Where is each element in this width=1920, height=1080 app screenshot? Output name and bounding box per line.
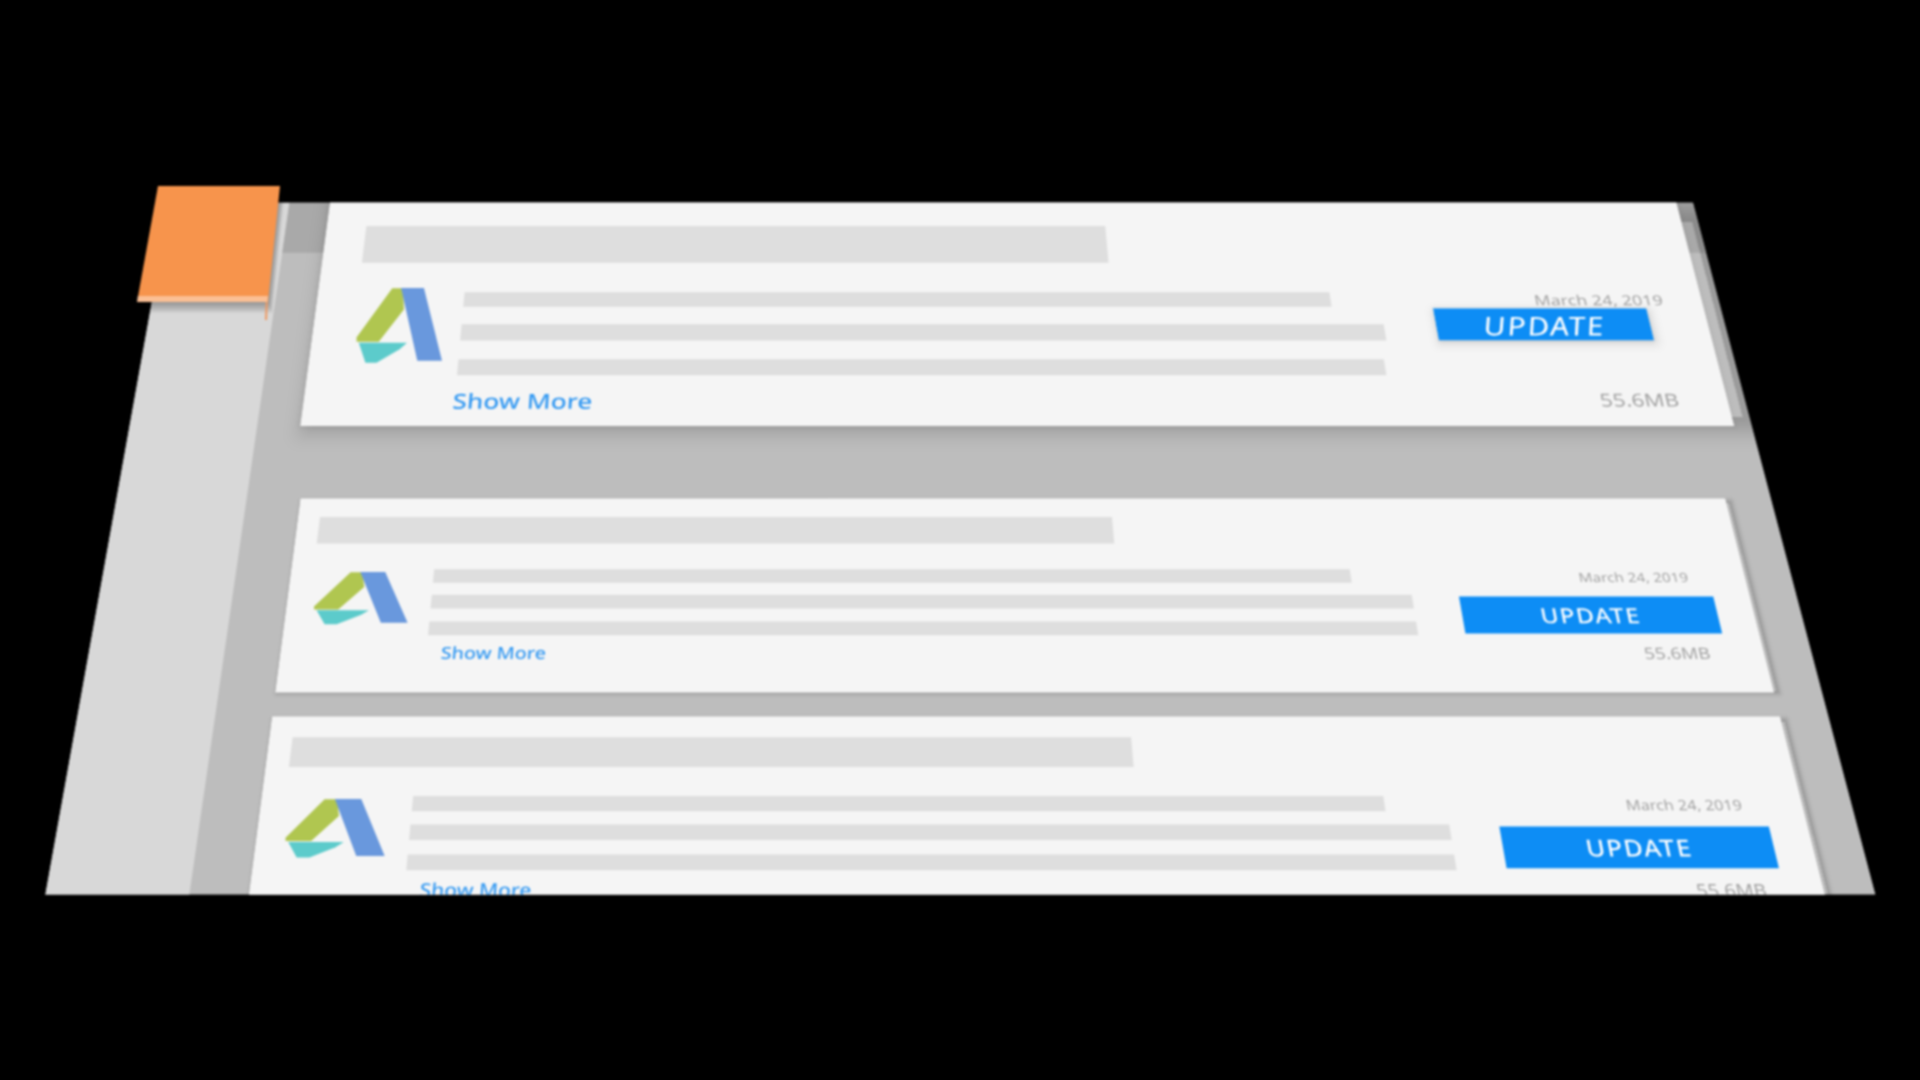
staticText: UPDATE <box>1537 601 1644 629</box>
button[interactable]: UPDATE <box>1459 596 1722 634</box>
staticText: 55.6MB <box>1642 642 1713 664</box>
staticText: UPDATE <box>1479 308 1608 340</box>
button[interactable]: Show More <box>451 386 594 415</box>
staticText: 55.6MB <box>1694 878 1768 895</box>
staticText: March 24, 2019 <box>1532 291 1665 310</box>
button[interactable]: Show More <box>419 877 533 895</box>
button[interactable]: UPDATE <box>1499 826 1779 868</box>
staticText: Show More <box>419 877 533 895</box>
button[interactable]: Show More <box>300 203 1734 426</box>
staticText: UPDATE <box>1582 831 1696 863</box>
staticText: March 24, 2019 <box>1624 795 1744 814</box>
button[interactable]: Show More <box>275 498 1774 693</box>
button[interactable]: UPDATE <box>1433 308 1654 340</box>
staticText: Show More <box>451 386 594 415</box>
staticText: Show More <box>440 641 547 664</box>
staticText: March 24, 2019 <box>1577 568 1690 585</box>
button[interactable]: Show More <box>249 716 1825 895</box>
button[interactable]: Show More <box>440 641 547 664</box>
staticText: 55.6MB <box>1597 387 1682 411</box>
button[interactable]: Navigation rail <box>45 203 289 895</box>
button[interactable]: Open navigation drawer <box>137 186 280 303</box>
